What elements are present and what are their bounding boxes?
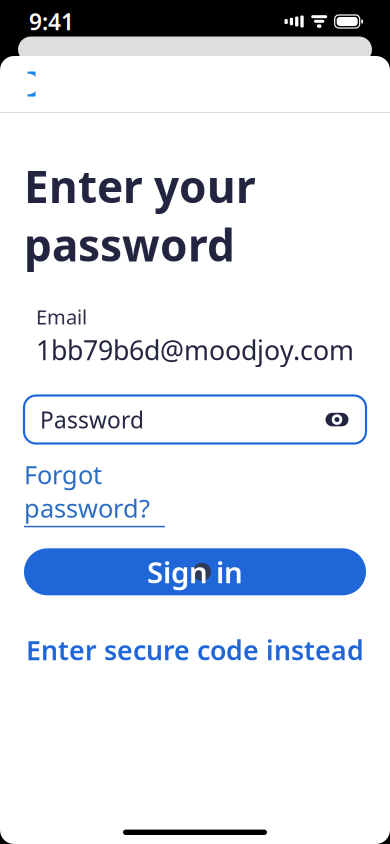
button[interactable]: Enter secure code instead — [24, 623, 366, 677]
staticText: Password — [40, 404, 144, 435]
button[interactable]: Sign in — [24, 548, 366, 595]
staticText: 9:41 — [29, 6, 74, 36]
button[interactable]: Back — [0, 56, 56, 112]
staticText: Enter secure code instead — [26, 632, 364, 668]
staticText: 1bb79b6d@moodjoy.com — [36, 332, 354, 367]
button[interactable]: Forgot password? — [24, 457, 165, 527]
staticText: Enter your password — [24, 157, 256, 274]
staticText: Email — [36, 304, 87, 330]
staticText: Sign in — [147, 552, 243, 591]
staticText: Forgot password? — [24, 457, 150, 525]
button[interactable]: Password — [24, 395, 366, 443]
